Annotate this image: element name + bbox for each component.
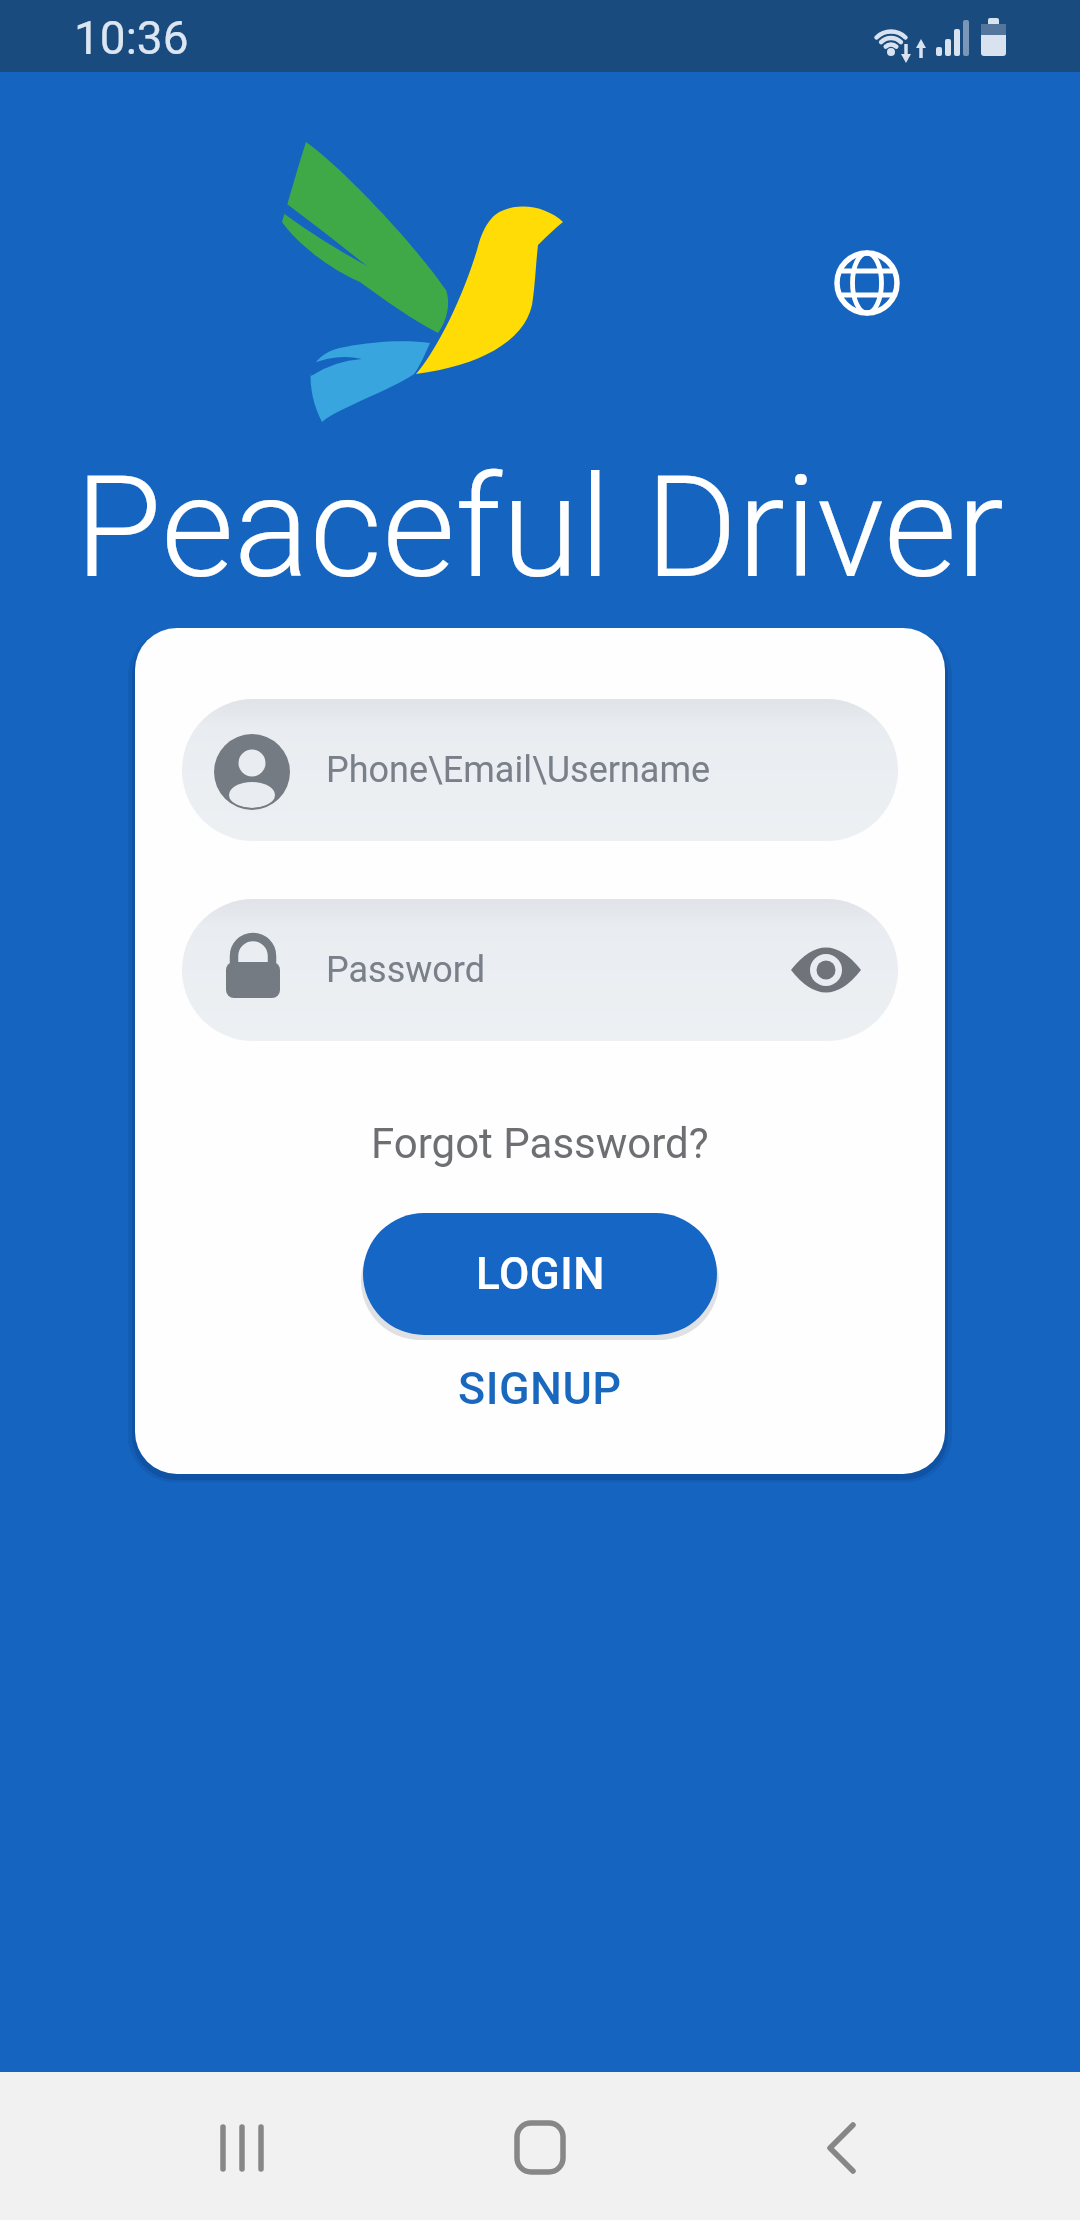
button[interactable] <box>784 928 868 1012</box>
button[interactable] <box>182 899 898 1041</box>
staticText: 10:36 <box>74 11 189 65</box>
button[interactable]: LOGIN <box>363 1213 717 1335</box>
button[interactable] <box>192 2097 292 2195</box>
button[interactable]: Forgot Password? <box>290 1115 790 1171</box>
button[interactable] <box>825 241 909 325</box>
staticText: Phone\Email\Username <box>326 749 711 791</box>
button[interactable] <box>182 699 898 841</box>
staticText: Password <box>326 949 486 991</box>
button[interactable] <box>490 2097 590 2195</box>
button[interactable]: SIGNUP <box>440 1360 640 1416</box>
staticText: SIGNUP <box>458 1362 622 1415</box>
staticText: Peaceful Driver <box>75 445 1005 610</box>
staticText: Forgot Password? <box>371 1119 709 1168</box>
staticText: LOGIN <box>476 1248 605 1300</box>
button[interactable] <box>790 2097 890 2195</box>
